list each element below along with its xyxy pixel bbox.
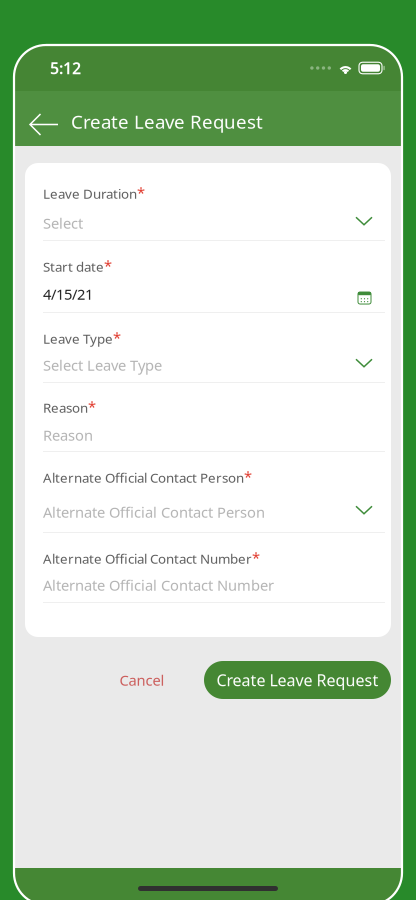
- staticText: *: [113, 328, 121, 347]
- staticText: Select: [43, 213, 83, 233]
- staticText: Start date: [43, 258, 104, 275]
- staticText: Alternate Official Contact Person: [43, 469, 244, 486]
- button[interactable]: Back: [14, 100, 71, 149]
- staticText: Select Leave Type: [43, 355, 162, 375]
- staticText: Leave Type: [43, 330, 113, 347]
- staticText: Alternate Official Contact Number: [43, 550, 252, 567]
- staticText: Create Leave Request: [216, 669, 378, 691]
- staticText: *: [137, 183, 145, 202]
- button[interactable]: Start date: [43, 241, 385, 313]
- staticText: Alternate Official Contact Number: [43, 575, 274, 595]
- staticText: Leave Duration: [43, 185, 137, 202]
- button[interactable]: Alternate Official Contact Person: [43, 452, 385, 533]
- staticText: 5:12: [50, 57, 81, 79]
- button[interactable]: Reason: [43, 383, 385, 452]
- button[interactable]: Cancel: [108, 661, 176, 699]
- staticText: *: [88, 397, 96, 416]
- staticText: 4/15/21: [43, 284, 93, 304]
- staticText: *: [244, 467, 252, 486]
- staticText: Cancel: [119, 670, 164, 690]
- button[interactable]: Create Leave Request: [204, 661, 391, 699]
- button[interactable]: Leave Duration: [43, 163, 385, 241]
- staticText: Create Leave Request: [71, 109, 263, 134]
- button[interactable]: Alternate Official Contact Number: [43, 533, 385, 603]
- staticText: *: [252, 548, 260, 567]
- staticText: Alternate Official Contact Person: [43, 502, 265, 522]
- staticText: *: [104, 256, 112, 275]
- staticText: Reason: [43, 399, 88, 416]
- button[interactable]: Leave Type: [43, 313, 385, 383]
- staticText: Reason: [43, 425, 93, 445]
